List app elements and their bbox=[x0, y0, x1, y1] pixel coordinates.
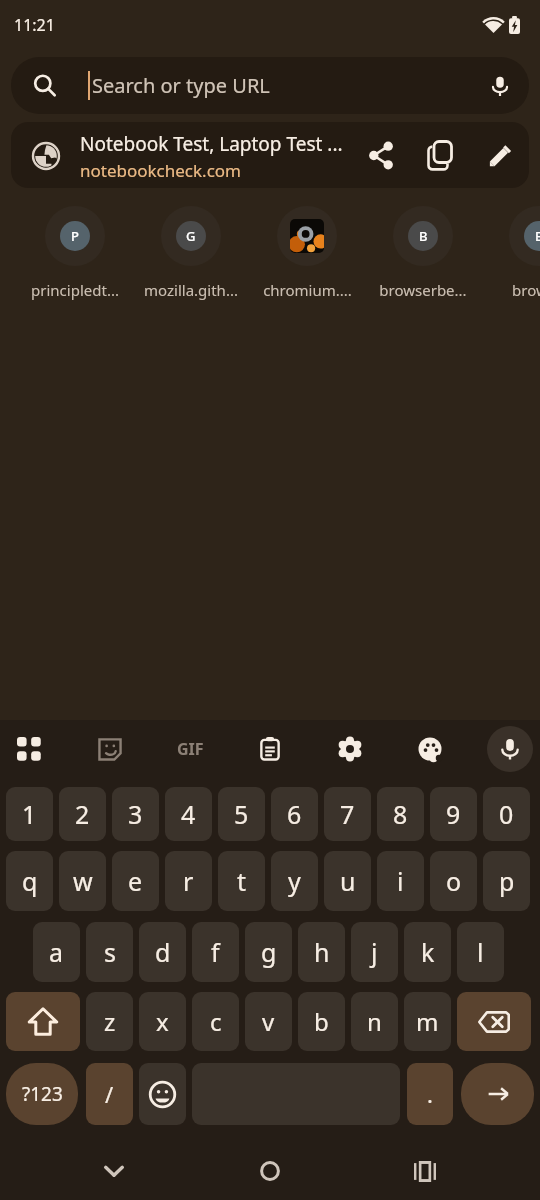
button[interactable]: . bbox=[407, 1063, 453, 1125]
button[interactable]: Notebook Test, Laptop Test ... bbox=[11, 122, 529, 188]
staticText: 9 bbox=[446, 797, 461, 831]
button[interactable]: k bbox=[404, 922, 451, 982]
other: Search bbox=[34, 75, 56, 97]
button[interactable]: n bbox=[351, 992, 398, 1051]
button[interactable]: 2 bbox=[59, 787, 106, 841]
button[interactable]: b bbox=[298, 992, 345, 1051]
staticText: u bbox=[340, 864, 356, 898]
button[interactable]: c bbox=[192, 992, 239, 1051]
button[interactable]: v bbox=[245, 992, 292, 1051]
button[interactable]: d bbox=[139, 922, 186, 982]
button[interactable]: Hide keyboard bbox=[88, 1145, 140, 1197]
staticText: f bbox=[211, 935, 220, 969]
button[interactable]: 4 bbox=[165, 787, 212, 841]
button[interactable]: e bbox=[112, 851, 159, 911]
button[interactable]: Stickers bbox=[86, 720, 134, 778]
button[interactable]: 9 bbox=[430, 787, 477, 841]
button[interactable]: Clipboard bbox=[246, 720, 294, 778]
button[interactable]: u bbox=[324, 851, 371, 911]
button[interactable]: 8 bbox=[377, 787, 424, 841]
button[interactable]: Recent apps bbox=[399, 1145, 451, 1197]
staticText: b bbox=[314, 1005, 329, 1038]
button[interactable]: w bbox=[59, 851, 106, 911]
button[interactable]: i bbox=[377, 851, 424, 911]
button[interactable]: 1 bbox=[6, 787, 53, 841]
staticText: 8 bbox=[393, 797, 408, 831]
staticText: w bbox=[73, 864, 93, 898]
staticText: ?123 bbox=[22, 1081, 63, 1107]
button[interactable]: 6 bbox=[271, 787, 318, 841]
button[interactable]: r bbox=[165, 851, 212, 911]
button[interactable]: 0 bbox=[483, 787, 530, 841]
button[interactable]: 3 bbox=[112, 787, 159, 841]
staticText: 2 bbox=[75, 797, 90, 831]
button[interactable]: Home bbox=[244, 1145, 296, 1197]
button[interactable]: Search bbox=[11, 57, 529, 114]
staticText: GIF bbox=[177, 738, 204, 760]
button[interactable]: / bbox=[86, 1063, 133, 1125]
button[interactable]: a bbox=[33, 922, 80, 982]
staticText: t bbox=[237, 864, 247, 898]
staticText: chromium.... bbox=[263, 280, 352, 300]
button[interactable]: GIF bbox=[166, 720, 214, 778]
button[interactable]: Voice input bbox=[487, 726, 533, 772]
staticText: 6 bbox=[287, 797, 302, 831]
button[interactable]: E bbox=[481, 206, 540, 300]
staticText: r bbox=[183, 864, 194, 898]
staticText: 5 bbox=[234, 797, 249, 831]
button[interactable]: x bbox=[139, 992, 186, 1051]
staticText: 3 bbox=[128, 797, 143, 831]
button[interactable]: Emoji bbox=[139, 1063, 186, 1125]
staticText: P bbox=[71, 227, 79, 245]
button[interactable]: Enter bbox=[461, 1063, 534, 1125]
button[interactable]: t bbox=[218, 851, 265, 911]
button[interactable]: 7 bbox=[324, 787, 371, 841]
staticText: m bbox=[416, 1005, 439, 1038]
button[interactable]: Backspace bbox=[457, 992, 531, 1051]
staticText: 7 bbox=[340, 797, 355, 831]
button[interactable]: f bbox=[192, 922, 239, 982]
button[interactable]: Theme bbox=[406, 720, 454, 778]
button[interactable]: Settings bbox=[326, 720, 374, 778]
staticText: k bbox=[421, 935, 435, 969]
button[interactable]: s bbox=[86, 922, 133, 982]
staticText: j bbox=[371, 935, 378, 969]
staticText: l bbox=[477, 935, 484, 969]
staticText: / bbox=[105, 1079, 114, 1109]
button[interactable]: 5 bbox=[218, 787, 265, 841]
staticText: s bbox=[104, 935, 116, 969]
button[interactable]: Edit bbox=[478, 122, 522, 188]
staticText: i bbox=[397, 864, 404, 898]
staticText: g bbox=[261, 935, 277, 969]
button[interactable]: Apps bbox=[5, 720, 53, 778]
button[interactable]: q bbox=[6, 851, 53, 911]
button[interactable]: z bbox=[86, 992, 133, 1051]
button[interactable]: B bbox=[365, 206, 481, 300]
staticText: 11:21 bbox=[14, 14, 55, 36]
staticText: v bbox=[262, 1005, 275, 1038]
staticText: p bbox=[499, 864, 515, 898]
button[interactable]: Tabs bbox=[418, 122, 462, 188]
button[interactable]: G bbox=[133, 206, 249, 300]
button[interactable]: chromium.... bbox=[249, 206, 365, 300]
button[interactable]: l bbox=[457, 922, 504, 982]
staticText: 1 bbox=[22, 797, 37, 831]
staticText: q bbox=[22, 864, 38, 898]
button[interactable]: p bbox=[483, 851, 530, 911]
button[interactable]: m bbox=[404, 992, 451, 1051]
button[interactable]: o bbox=[430, 851, 477, 911]
staticText: brows... bbox=[512, 280, 540, 300]
button[interactable]: y bbox=[271, 851, 318, 911]
staticText: z bbox=[104, 1005, 116, 1038]
button[interactable]: ?123 bbox=[6, 1063, 78, 1125]
staticText: 0 bbox=[499, 797, 514, 831]
staticText: Search or type URL bbox=[92, 72, 270, 99]
staticText: o bbox=[446, 864, 462, 898]
button[interactable]: P bbox=[17, 206, 133, 300]
button[interactable]: Share bbox=[359, 122, 403, 188]
button[interactable]: h bbox=[298, 922, 345, 982]
button[interactable]: j bbox=[351, 922, 398, 982]
button[interactable]: Shift bbox=[6, 992, 80, 1051]
button[interactable]: g bbox=[245, 922, 292, 982]
